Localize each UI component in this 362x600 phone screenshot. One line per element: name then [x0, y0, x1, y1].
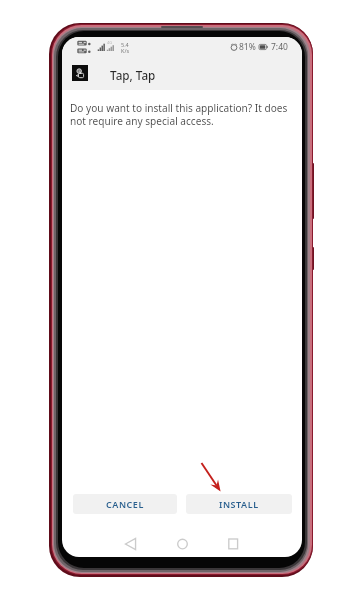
staticText: INSTALL: [219, 498, 259, 510]
staticText: 4G: [107, 40, 113, 45]
staticText: 7:40: [271, 41, 288, 53]
button[interactable]: Recent apps: [219, 532, 247, 556]
button[interactable]: CANCEL: [73, 494, 177, 514]
staticText: 81%: [239, 41, 256, 53]
staticText: Do you want to install this application?…: [70, 101, 298, 128]
button[interactable]: Home: [168, 532, 196, 556]
button[interactable]: INSTALL: [186, 494, 292, 514]
staticText: CANCEL: [106, 498, 144, 510]
staticText: 5.4 K/s: [121, 41, 130, 55]
staticText: Tap, Tap: [110, 67, 156, 83]
button[interactable]: Back: [116, 532, 144, 556]
